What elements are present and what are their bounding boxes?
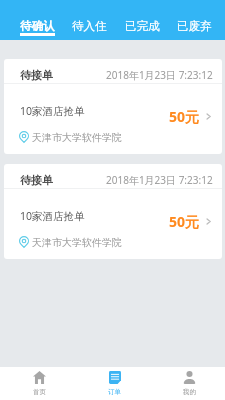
staticText: 待接单 [20, 68, 53, 82]
staticText: 待入住 [72, 19, 107, 33]
button[interactable]: 待入住 [72, 0, 107, 40]
button[interactable]: 待接单 [4, 59, 222, 154]
other: 我的 [183, 371, 196, 384]
staticText: 已废弃 [177, 19, 212, 33]
staticText: 待接单 [20, 173, 53, 187]
other: 首页 [33, 371, 46, 384]
staticText: 50元 [169, 107, 200, 126]
staticText: 2018年1月23日 7:23:12 [106, 173, 213, 187]
staticText: 已完成 [125, 19, 160, 33]
button[interactable]: 已废弃 [177, 0, 212, 40]
button[interactable]: 首页 [2, 367, 77, 400]
other: 订单 [109, 371, 121, 384]
staticText: 天津市大学软件学院 [32, 236, 122, 249]
staticText: 订单 [108, 388, 121, 396]
staticText: 天津市大学软件学院 [32, 131, 122, 144]
staticText: 首页 [33, 388, 46, 396]
button[interactable]: 我的 [152, 367, 225, 400]
staticText: 50元 [169, 212, 200, 231]
staticText: 10家酒店抢单 [20, 104, 85, 118]
staticText: 2018年1月23日 7:23:12 [106, 68, 213, 82]
button[interactable]: 待接单 [4, 164, 222, 259]
button[interactable]: 已完成 [125, 0, 160, 40]
button[interactable]: 订单 [77, 367, 152, 400]
staticText: 10家酒店抢单 [20, 209, 85, 223]
staticText: 我的 [183, 388, 196, 396]
button[interactable]: 待确认 [20, 0, 55, 40]
staticText: 待确认 [20, 19, 55, 33]
